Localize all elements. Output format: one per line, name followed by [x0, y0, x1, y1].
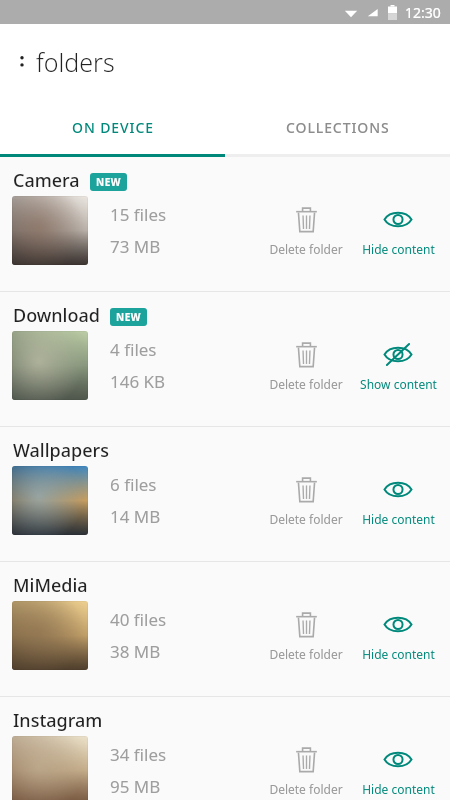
button[interactable]: Delete folder: [260, 606, 352, 665]
button[interactable]: Wallpapers: [0, 427, 450, 561]
staticText: NEW: [116, 310, 141, 324]
button[interactable]: Delete folder: [260, 471, 352, 530]
staticText: Delete folder: [269, 646, 343, 662]
staticText: COLLECTIONS: [286, 118, 390, 137]
staticText: MiMedia: [13, 573, 88, 598]
button[interactable]: Delete folder: [260, 741, 352, 800]
staticText: 12:30: [405, 3, 441, 22]
button[interactable]: ON DEVICE: [0, 100, 225, 154]
button[interactable]: Hide content: [352, 471, 444, 530]
staticText: Delete folder: [269, 781, 343, 797]
staticText: Hide content: [362, 511, 435, 527]
button[interactable]: Show content: [352, 336, 444, 395]
staticText: Instagram: [13, 708, 103, 733]
staticText: 6 files: [110, 473, 157, 496]
staticText: 146 KB: [110, 370, 166, 393]
button[interactable]: Camera: [0, 157, 450, 291]
button[interactable]: COLLECTIONS: [225, 100, 450, 154]
staticText: Hide content: [362, 646, 435, 662]
button[interactable]: Hide content: [352, 741, 444, 800]
button[interactable]: Instagram: [0, 697, 450, 800]
staticText: 15 files: [110, 203, 167, 226]
button[interactable]: More options: [19, 50, 25, 74]
staticText: NEW: [96, 175, 121, 189]
staticText: 73 MB: [110, 235, 161, 258]
staticText: 38 MB: [110, 640, 161, 663]
button[interactable]: MiMedia: [0, 562, 450, 696]
staticText: 4 files: [110, 338, 157, 361]
button[interactable]: Hide content: [352, 606, 444, 665]
staticText: Hide content: [362, 781, 435, 797]
staticText: 40 files: [110, 608, 167, 631]
button[interactable]: Delete folder: [260, 201, 352, 260]
staticText: ON DEVICE: [72, 118, 154, 137]
button[interactable]: Hide content: [352, 201, 444, 260]
staticText: Wallpapers: [13, 438, 109, 463]
staticText: 14 MB: [110, 505, 161, 528]
staticText: Delete folder: [269, 511, 343, 527]
staticText: folders: [36, 45, 115, 79]
staticText: 95 MB: [110, 775, 161, 798]
staticText: Download: [13, 303, 100, 328]
staticText: Camera: [13, 168, 80, 193]
staticText: Show content: [360, 376, 437, 392]
staticText: 34 files: [110, 743, 167, 766]
staticText: Delete folder: [269, 241, 343, 257]
staticText: Hide content: [362, 241, 435, 257]
staticText: Delete folder: [269, 376, 343, 392]
button[interactable]: Download: [0, 292, 450, 426]
button[interactable]: Delete folder: [260, 336, 352, 395]
